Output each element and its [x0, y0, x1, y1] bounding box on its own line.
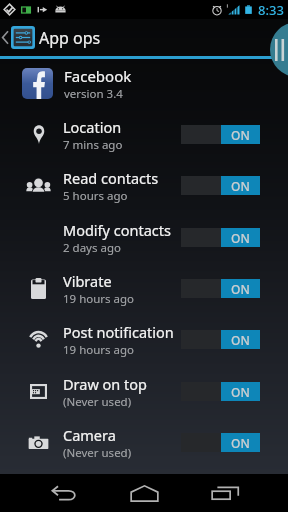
staticText: 7 mins ago	[63, 137, 123, 153]
button[interactable]: Pause	[270, 22, 288, 77]
staticText: 19 hours ago	[63, 342, 135, 358]
staticText: Facebook	[64, 66, 132, 86]
staticText: 19 hours ago	[63, 291, 135, 307]
staticText: Vibrate	[63, 271, 112, 291]
staticText: ON	[231, 178, 250, 194]
button[interactable]: Post notification	[0, 314, 288, 365]
staticText: Location	[63, 117, 122, 137]
button[interactable]: Toggle permission	[181, 125, 260, 144]
staticText: 5 hours ago	[63, 188, 128, 204]
staticText: 8:33	[258, 1, 284, 19]
staticText: Modify contacts	[63, 220, 171, 240]
staticText: (Never used)	[63, 445, 132, 461]
staticText: ON	[231, 332, 250, 348]
staticText: 2 days ago	[63, 240, 121, 256]
staticText: (Never used)	[63, 394, 132, 410]
staticText: Post notification	[63, 322, 174, 342]
staticText: App ops	[39, 27, 101, 49]
button[interactable]: Toggle permission	[181, 176, 260, 195]
staticText: version 3.4	[64, 86, 123, 102]
button[interactable]: Read contacts	[0, 160, 288, 211]
staticText: ON	[231, 230, 250, 246]
button[interactable]: Location	[0, 109, 288, 160]
staticText: Camera	[63, 425, 116, 445]
staticText: ON	[231, 435, 250, 451]
staticText: Read contacts	[63, 168, 159, 188]
button[interactable]: Toggle permission	[181, 330, 260, 349]
button[interactable]: Recent apps	[199, 474, 251, 512]
button[interactable]: Home	[118, 474, 170, 512]
button[interactable]: Toggle permission	[181, 279, 260, 298]
staticText: ON	[231, 281, 250, 297]
button[interactable]: Toggle permission	[181, 228, 260, 247]
staticText: ON	[231, 127, 250, 143]
button[interactable]: Navigate up	[0, 19, 35, 56]
button[interactable]: Camera	[0, 417, 288, 468]
staticText: ON	[231, 384, 250, 400]
button[interactable]: Draw on top	[0, 366, 288, 417]
button[interactable]: Vibrate	[0, 263, 288, 314]
button[interactable]: Toggle permission	[181, 382, 260, 401]
staticText: Draw on top	[63, 374, 148, 394]
button[interactable]: Facebook	[0, 62, 288, 105]
button[interactable]: Toggle permission	[181, 433, 260, 452]
button[interactable]: Modify contacts	[0, 212, 288, 263]
button[interactable]: Back	[38, 474, 90, 512]
